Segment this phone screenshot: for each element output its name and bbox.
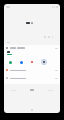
button[interactable]: Record <box>41 59 47 65</box>
button[interactable]: Call <box>4 45 60 84</box>
button[interactable]: Add <box>20 61 23 64</box>
button[interactable] <box>6 69 58 71</box>
button[interactable] <box>6 77 58 79</box>
button[interactable]: Call <box>9 61 12 64</box>
